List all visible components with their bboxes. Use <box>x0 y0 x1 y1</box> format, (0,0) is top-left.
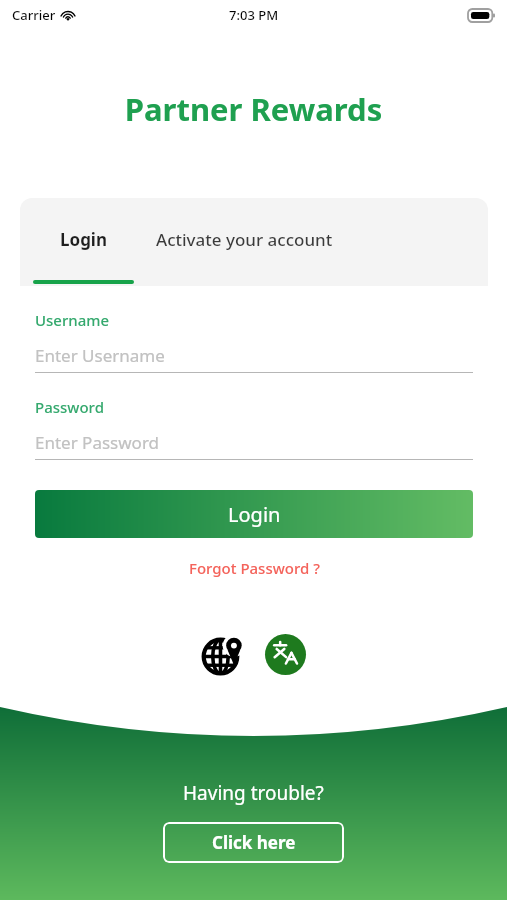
button[interactable]: Activate your account <box>156 228 333 251</box>
staticText: Username <box>35 310 110 330</box>
staticText: Forgot Password ? <box>189 558 320 578</box>
button[interactable]: Username <box>35 310 473 373</box>
staticText: Password <box>35 397 104 417</box>
button[interactable]: Password <box>35 397 473 460</box>
staticText: Enter Password <box>35 431 160 454</box>
button[interactable]: Forgot Password ? <box>183 552 326 584</box>
staticText: Partner Rewards <box>0 88 507 130</box>
staticText: Enter Username <box>35 344 165 367</box>
staticText: Login <box>60 228 108 251</box>
button[interactable]: Login <box>33 228 134 251</box>
staticText: Login <box>228 501 281 528</box>
staticText: 7:03 PM <box>229 6 279 24</box>
button[interactable]: Change language <box>260 629 310 679</box>
staticText: Activate your account <box>156 228 333 251</box>
button[interactable]: Login <box>35 490 473 538</box>
button[interactable]: Select region <box>198 629 248 679</box>
staticText: Click here <box>212 831 296 854</box>
staticText: Having trouble? <box>183 780 324 806</box>
staticText: Carrier <box>12 6 56 24</box>
button[interactable]: Click here <box>163 822 344 863</box>
